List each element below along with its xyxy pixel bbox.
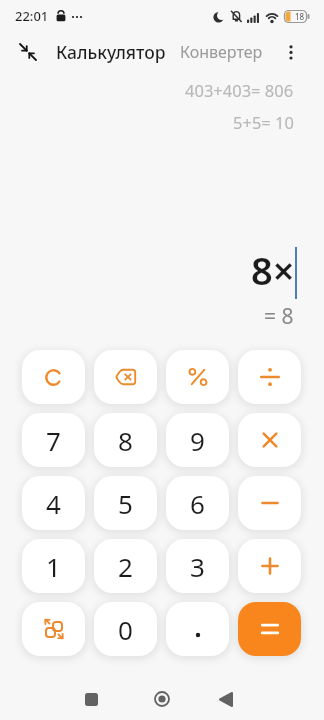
button[interactable] (238, 413, 301, 467)
button[interactable] (238, 602, 301, 656)
staticText: 7 (46, 423, 61, 458)
button[interactable]: 1 (22, 539, 85, 593)
button[interactable]: 0 (94, 602, 157, 656)
staticText: 8× (251, 244, 295, 296)
staticText: 5 (118, 486, 133, 521)
button[interactable]: Калькулятор (56, 40, 166, 64)
button[interactable]: 2 (94, 539, 157, 593)
staticText: 3 (190, 549, 205, 584)
staticText: 5+5= 10 (233, 111, 294, 133)
staticText: Калькулятор (56, 40, 166, 64)
button[interactable] (17, 41, 39, 63)
button[interactable] (149, 686, 175, 712)
button[interactable] (94, 350, 157, 404)
button[interactable]: 9 (166, 413, 229, 467)
button[interactable] (166, 350, 229, 404)
staticText: 4 (46, 486, 61, 521)
button[interactable] (213, 686, 239, 712)
button[interactable] (238, 350, 301, 404)
button[interactable] (22, 350, 85, 404)
staticText: 2 (118, 549, 133, 584)
button[interactable] (22, 602, 85, 656)
button[interactable]: Конвертер (180, 41, 263, 63)
button[interactable] (78, 686, 104, 712)
button[interactable] (238, 539, 301, 593)
staticText: 1 (46, 549, 61, 584)
staticText: 22:01 (15, 7, 49, 25)
staticText: 6 (190, 486, 205, 521)
button[interactable]: 6 (166, 476, 229, 530)
staticText: 8 (118, 423, 133, 458)
button[interactable] (166, 602, 229, 656)
button[interactable] (238, 476, 301, 530)
button[interactable] (282, 43, 300, 61)
staticText: Конвертер (180, 41, 263, 63)
staticText: 9 (190, 423, 205, 458)
button[interactable]: 3 (166, 539, 229, 593)
staticText: 403+403= 806 (185, 79, 294, 101)
staticText: = 8 (264, 302, 294, 331)
button[interactable]: 5 (94, 476, 157, 530)
button[interactable]: 7 (22, 413, 85, 467)
button[interactable]: 8 (94, 413, 157, 467)
staticText: 0 (118, 612, 133, 647)
staticText: 18 (295, 11, 305, 22)
button[interactable]: 4 (22, 476, 85, 530)
